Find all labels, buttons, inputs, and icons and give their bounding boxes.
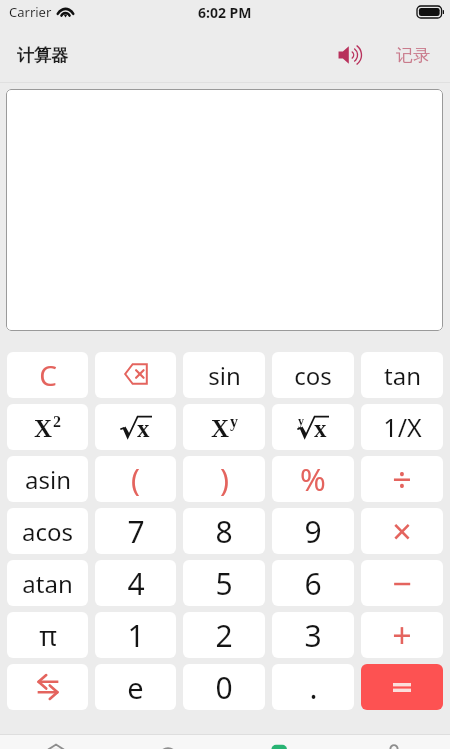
- staticText: 8: [215, 511, 233, 552]
- button[interactable]: 3: [272, 612, 354, 658]
- button[interactable]: (: [95, 456, 176, 502]
- staticText: ): [220, 459, 229, 500]
- button[interactable]: .: [272, 664, 354, 710]
- button[interactable]: 1/X: [361, 404, 443, 450]
- staticText: π: [39, 617, 57, 654]
- button[interactable]: %: [272, 456, 354, 502]
- button[interactable]: ×: [361, 508, 443, 554]
- button[interactable]: 5: [183, 560, 265, 606]
- staticText: x: [314, 415, 327, 437]
- button[interactable]: 0: [183, 664, 265, 710]
- button[interactable]: Backspace: [95, 352, 176, 398]
- staticText: acos: [22, 515, 73, 548]
- staticText: −: [392, 560, 412, 606]
- staticText: atan: [22, 567, 73, 600]
- button[interactable]: C: [7, 352, 88, 398]
- staticText: 6:02 PM: [198, 3, 252, 22]
- staticText: 6: [304, 563, 322, 604]
- button[interactable]: Equals: [361, 664, 443, 710]
- staticText: 2: [53, 413, 61, 431]
- button[interactable]: atan: [7, 560, 88, 606]
- staticText: y: [298, 414, 304, 427]
- button[interactable]: Discover: [112, 735, 224, 749]
- staticText: cos: [294, 359, 332, 392]
- button[interactable]: cos: [272, 352, 354, 398]
- button[interactable]: X squared: [7, 404, 88, 450]
- staticText: 记录: [396, 45, 430, 66]
- staticText: x: [137, 415, 150, 437]
- button[interactable]: 记录: [393, 39, 433, 72]
- staticText: ×: [392, 508, 412, 554]
- staticText: Carrier: [9, 3, 52, 21]
- staticText: 计算器: [17, 45, 68, 66]
- staticText: 1/X: [383, 410, 422, 444]
- button[interactable]: sin: [183, 352, 265, 398]
- button[interactable]: Y-th root: [272, 404, 354, 450]
- button[interactable]: 4: [95, 560, 176, 606]
- button[interactable]: Profile: [337, 735, 450, 749]
- staticText: C: [39, 356, 57, 394]
- staticText: 0: [215, 667, 233, 708]
- staticText: (: [131, 459, 140, 500]
- staticText: 5: [215, 563, 233, 604]
- staticText: y: [230, 413, 238, 431]
- staticText: 1: [127, 615, 145, 656]
- button[interactable]: ): [183, 456, 265, 502]
- button[interactable]: X to the power y: [183, 404, 265, 450]
- staticText: X: [211, 415, 230, 443]
- button[interactable]: asin: [7, 456, 88, 502]
- staticText: %: [300, 458, 326, 500]
- staticText: ÷: [392, 456, 412, 502]
- staticText: 3: [304, 615, 322, 656]
- staticText: 7: [127, 511, 145, 552]
- button[interactable]: 9: [272, 508, 354, 554]
- button[interactable]: Messages: [224, 735, 337, 749]
- staticText: 4: [127, 563, 145, 604]
- staticText: sin: [208, 359, 241, 392]
- staticText: +: [392, 612, 412, 658]
- staticText: tan: [384, 359, 421, 392]
- button[interactable]: tan: [361, 352, 443, 398]
- staticText: 2: [215, 615, 233, 656]
- button[interactable]: 7: [95, 508, 176, 554]
- button[interactable]: e: [95, 664, 176, 710]
- staticText: X: [34, 415, 53, 443]
- button[interactable]: 2: [183, 612, 265, 658]
- staticText: .: [309, 667, 318, 708]
- button[interactable]: 计算器: [10, 39, 75, 72]
- button[interactable]: Home: [0, 735, 112, 749]
- button[interactable]: Square root: [95, 404, 176, 450]
- button[interactable]: acos: [7, 508, 88, 554]
- staticText: e: [127, 668, 144, 707]
- button[interactable]: Swap: [7, 664, 88, 710]
- staticText: 9: [304, 511, 322, 552]
- button[interactable]: π: [7, 612, 88, 658]
- staticText: asin: [25, 463, 71, 496]
- button[interactable]: 6: [272, 560, 354, 606]
- button[interactable]: 1: [95, 612, 176, 658]
- button[interactable]: Sound: [334, 38, 368, 72]
- button[interactable]: −: [361, 560, 443, 606]
- button[interactable]: ÷: [361, 456, 443, 502]
- button[interactable]: 8: [183, 508, 265, 554]
- button[interactable]: +: [361, 612, 443, 658]
